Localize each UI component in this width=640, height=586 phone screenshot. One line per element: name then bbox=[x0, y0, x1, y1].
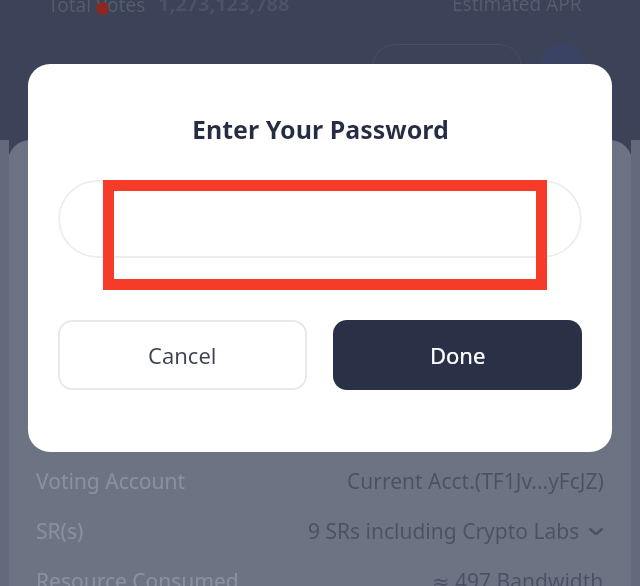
button[interactable]: Done bbox=[333, 320, 582, 390]
staticText: Enter Your Password bbox=[192, 112, 449, 146]
staticText: Done bbox=[430, 340, 486, 370]
staticText: Resource Consumed bbox=[36, 567, 239, 586]
staticText: Cancel bbox=[148, 340, 217, 370]
button[interactable]: Resource Consumed bbox=[8, 558, 632, 586]
button[interactable]: SR(s) bbox=[8, 508, 632, 554]
staticText: Voting Account bbox=[36, 467, 186, 496]
other: Highlight annotation bbox=[103, 180, 547, 290]
staticText: Estimated APR bbox=[452, 0, 582, 17]
staticText: 1,273,123,788 bbox=[158, 0, 290, 17]
staticText: Total Votes bbox=[48, 0, 146, 18]
staticText: ≈ 497 Bandwidth bbox=[432, 567, 604, 586]
button[interactable]: Cancel bbox=[58, 320, 307, 390]
button[interactable]: Voting Account bbox=[8, 458, 632, 504]
button[interactable]: Password input bbox=[58, 180, 582, 258]
staticText: Current Acct.(TF1Jv...yFcJZ) bbox=[347, 467, 604, 496]
staticText: 9 SRs including Crypto Labs bbox=[308, 517, 580, 546]
staticText: SR(s) bbox=[36, 517, 84, 546]
